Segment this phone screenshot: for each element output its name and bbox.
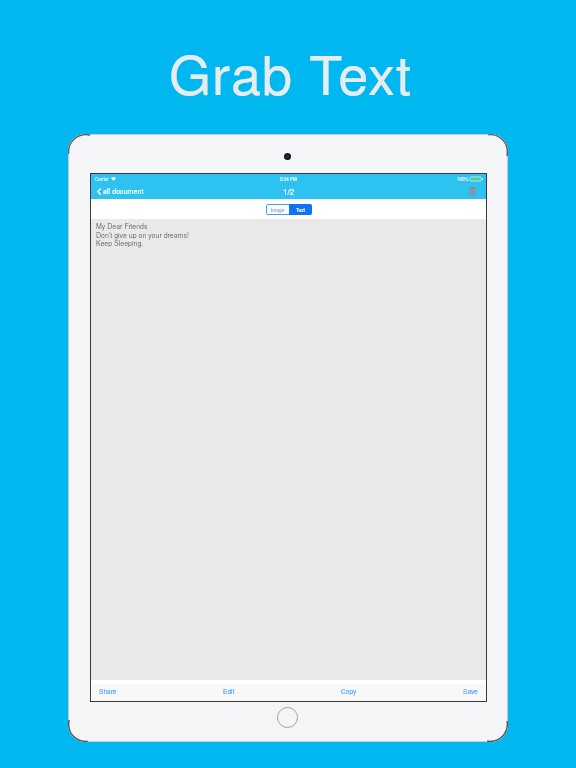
button[interactable]: Delete document (469, 187, 476, 196)
staticText: Carrier (95, 176, 109, 182)
button[interactable]: Save (460, 684, 481, 697)
staticText: Text (296, 206, 305, 213)
button[interactable]: Edit (220, 684, 238, 697)
button[interactable]: Copy (338, 684, 360, 697)
staticText: Grab Text (169, 33, 413, 99)
staticText: Copy (341, 686, 357, 695)
button[interactable]: all document (91, 185, 148, 197)
button[interactable]: Text (289, 204, 312, 215)
staticText: 1/2 (283, 186, 295, 197)
button[interactable]: Home (277, 707, 298, 728)
staticText: 100% (457, 176, 469, 182)
staticText: My Dear Friends Don’t give up on your dr… (96, 221, 189, 248)
staticText: Edit (223, 686, 235, 695)
staticText: Share (99, 686, 117, 695)
staticText: all document (103, 186, 144, 196)
staticText: 2:34 PM (280, 176, 297, 182)
button[interactable]: Share (96, 684, 120, 697)
staticText: Save (463, 686, 478, 695)
button[interactable]: Image (266, 204, 289, 215)
staticText: Image (271, 206, 285, 213)
